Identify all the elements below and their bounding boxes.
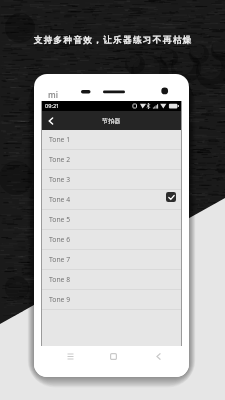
staticText: Tone 5 <box>49 215 71 224</box>
button[interactable]: Back <box>42 112 60 130</box>
button[interactable]: Tone 8 <box>42 270 181 290</box>
button[interactable]: Tone 9 <box>42 290 181 310</box>
button[interactable]: Menu <box>66 352 75 361</box>
staticText: Tone 6 <box>49 235 71 244</box>
button[interactable]: Home <box>109 352 118 361</box>
staticText: 节拍器 <box>102 117 121 125</box>
button[interactable]: Tone 4 <box>42 190 181 210</box>
button[interactable]: Tone 7 <box>42 250 181 270</box>
staticText: 支持多种音效，让乐器练习不再枯燥 <box>33 35 193 46</box>
staticText: Tone 7 <box>49 255 71 264</box>
staticText: Tone 9 <box>49 295 71 304</box>
button[interactable]: Tone 2 <box>42 150 181 170</box>
staticText: Tone 1 <box>49 135 71 144</box>
button[interactable]: Back <box>154 352 163 361</box>
button[interactable]: Tone 3 <box>42 170 181 190</box>
button[interactable]: Tone 5 <box>42 210 181 230</box>
button[interactable]: Tone 6 <box>42 230 181 250</box>
staticText: Tone 8 <box>49 275 71 284</box>
staticText: 09:21 <box>45 102 60 110</box>
staticText: Tone 4 <box>49 195 71 204</box>
staticText: Tone 3 <box>49 175 71 184</box>
staticText: Tone 2 <box>49 155 71 164</box>
staticText: mi <box>48 89 58 100</box>
button[interactable]: Tone 1 <box>42 130 181 150</box>
